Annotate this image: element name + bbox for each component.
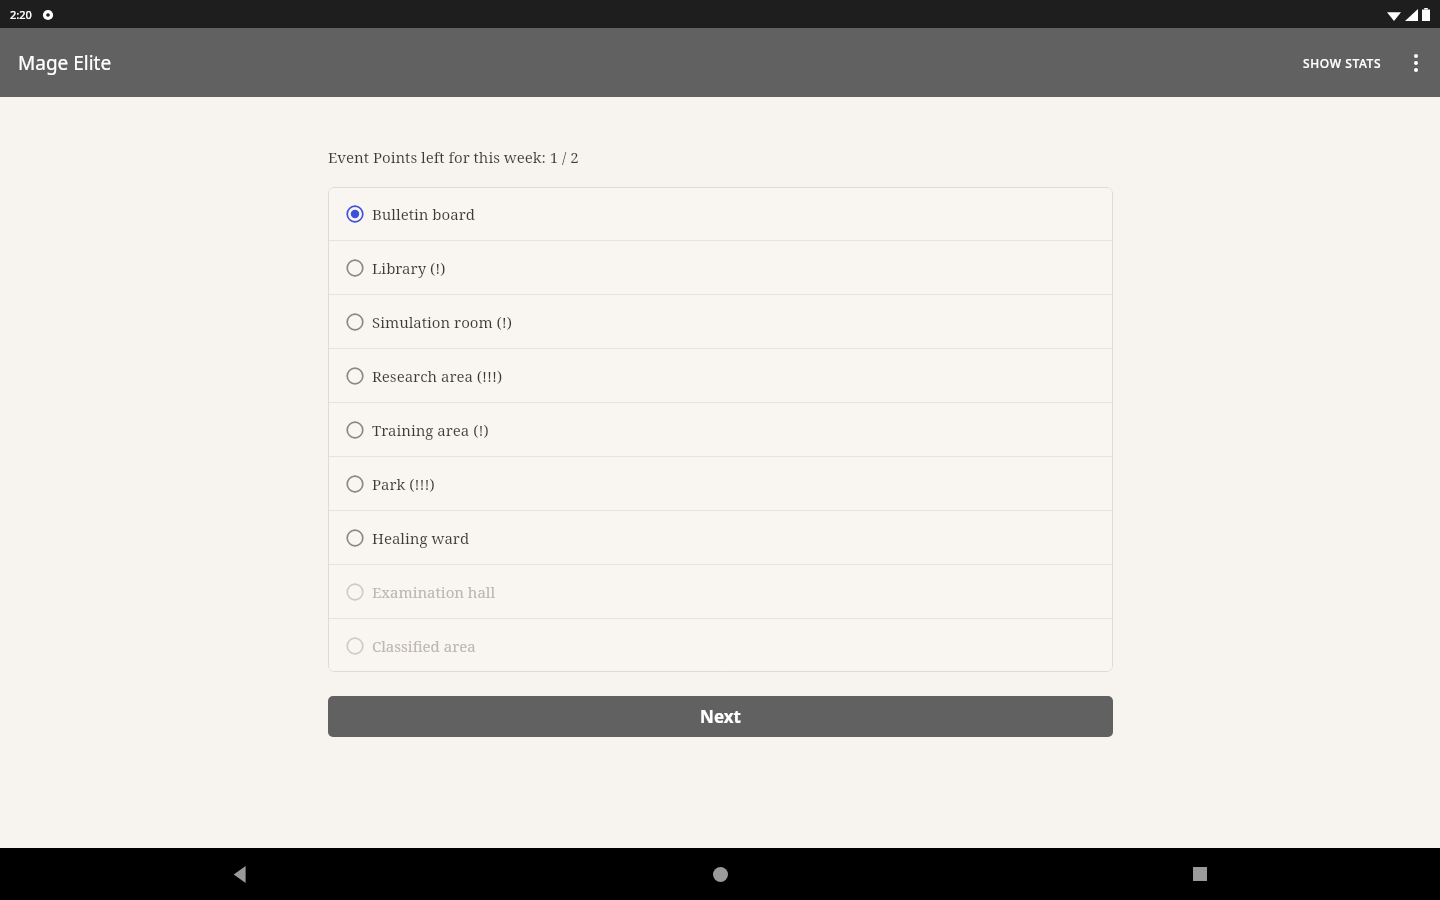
button[interactable]: Simulation room (!)	[328, 295, 1113, 348]
button[interactable]: Healing ward	[328, 511, 1113, 564]
button: Examination hall	[328, 565, 1113, 618]
staticText: Library (!)	[372, 258, 446, 278]
button[interactable]: Back	[0, 848, 480, 900]
staticText: Event Points left for this week: 1 / 2	[328, 147, 579, 167]
button[interactable]: Training area (!)	[328, 403, 1113, 456]
staticText: Classified area	[372, 636, 476, 656]
button[interactable]: SHOW STATS	[1293, 41, 1392, 85]
staticText: Research area (!!!)	[372, 366, 503, 386]
staticText: Park (!!!)	[372, 474, 435, 494]
staticText: Training area (!)	[372, 420, 489, 440]
staticText: Bulletin board	[372, 204, 475, 224]
button[interactable]: Recent apps	[960, 848, 1440, 900]
staticText: Healing ward	[372, 528, 470, 548]
button[interactable]: Library (!)	[328, 241, 1113, 294]
button[interactable]: Home	[480, 848, 960, 900]
button: Classified area	[328, 619, 1113, 672]
staticText: Examination hall	[372, 582, 496, 602]
button[interactable]: Research area (!!!)	[328, 349, 1113, 402]
button[interactable]: Bulletin board	[328, 187, 1113, 240]
button[interactable]: Next	[328, 696, 1113, 737]
button[interactable]: Park (!!!)	[328, 457, 1113, 510]
button[interactable]: More options	[1392, 39, 1440, 87]
staticText: SHOW STATS	[1303, 55, 1382, 71]
staticText: Simulation room (!)	[372, 312, 512, 332]
staticText: Mage Elite	[18, 50, 112, 76]
staticText: Next	[700, 705, 741, 728]
staticText: 2:20	[10, 7, 32, 22]
